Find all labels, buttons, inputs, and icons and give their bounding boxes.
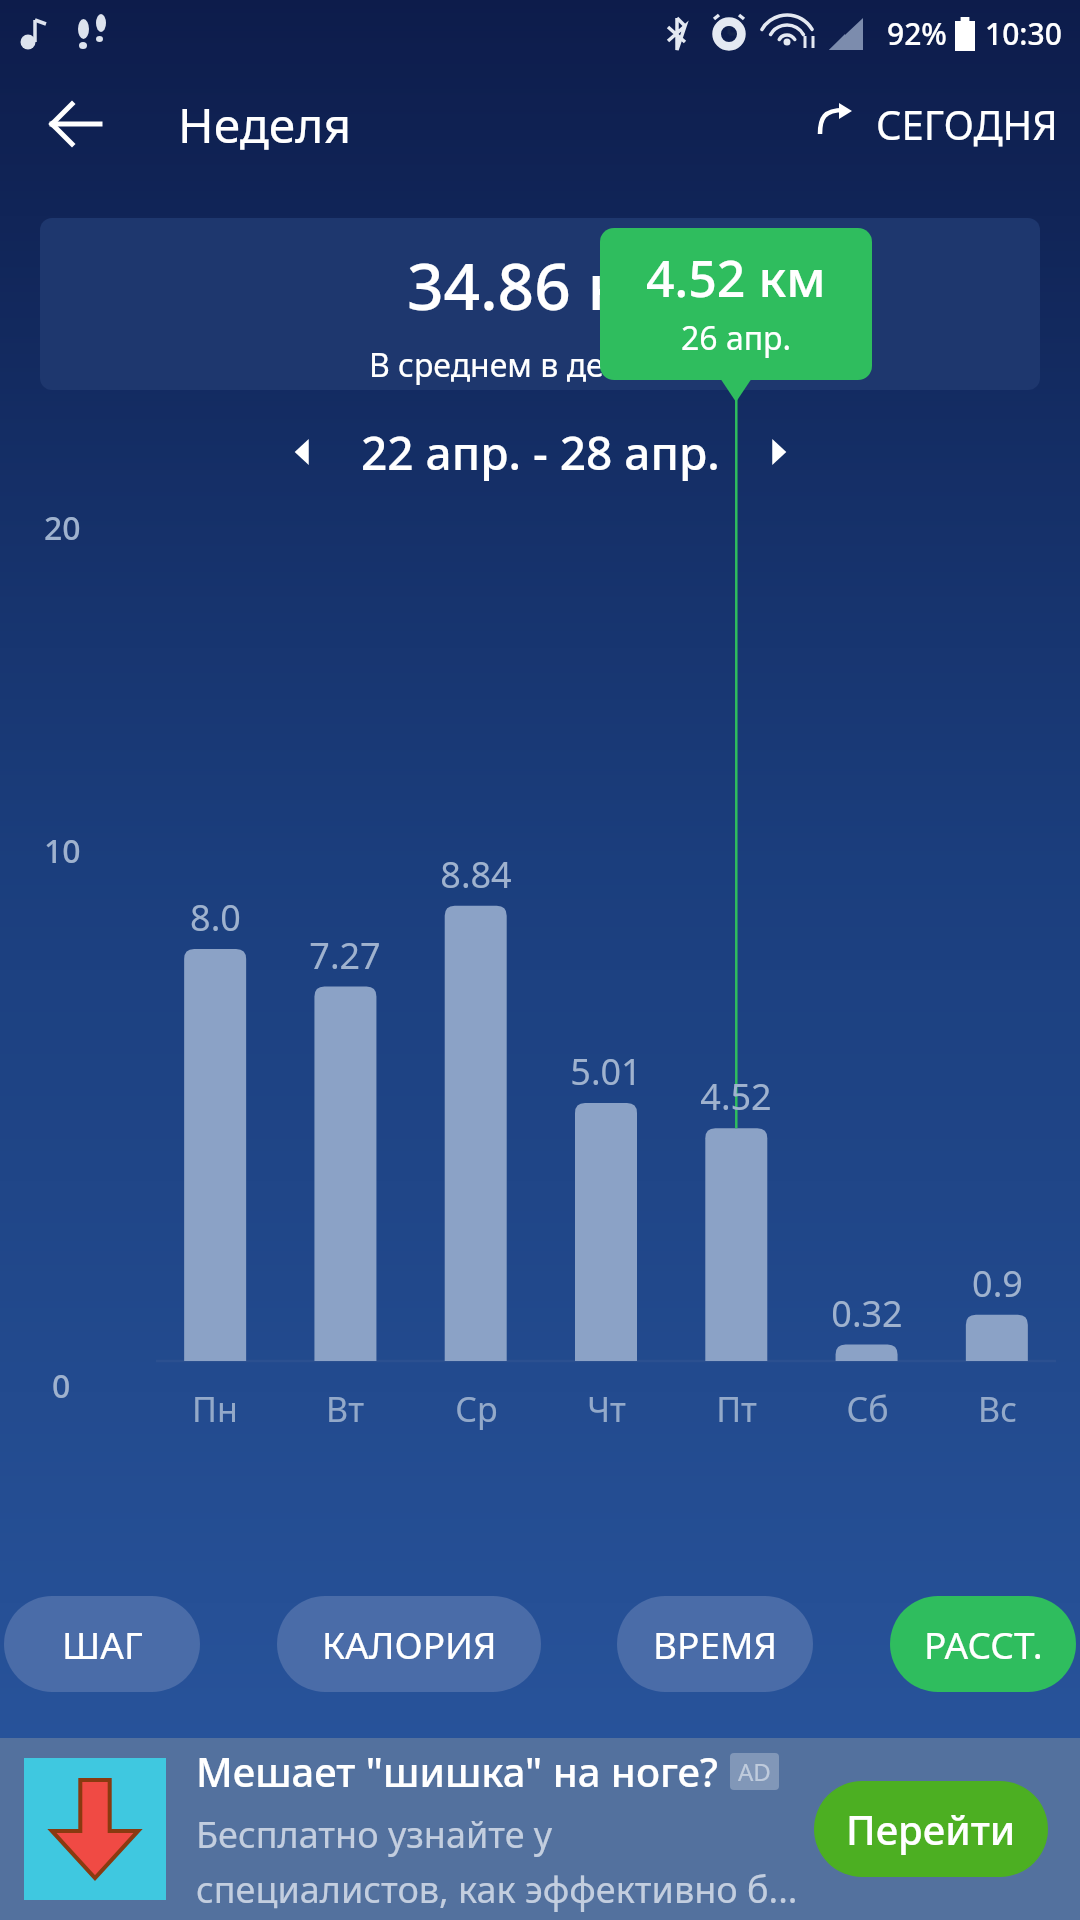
button[interactable]: ШАГ: [4, 1596, 200, 1692]
staticText: 0.32: [831, 1289, 903, 1338]
button[interactable]: 4.52 км: [600, 228, 872, 404]
staticText: 20: [44, 506, 81, 550]
staticText: AD: [738, 1755, 771, 1788]
staticText: Ср: [455, 1386, 498, 1432]
button[interactable]: РАССТ.: [890, 1596, 1076, 1692]
staticText: 10:30: [985, 13, 1062, 54]
staticText: 26 апр.: [681, 316, 792, 360]
staticText: 22 апр. - 28 апр.: [361, 421, 720, 484]
button[interactable]: Back: [34, 84, 114, 164]
staticText: 8.0: [190, 893, 241, 942]
button[interactable]: Мешает "шишка" на ноге?: [0, 1738, 1080, 1920]
button[interactable]: ВРЕМЯ: [617, 1596, 813, 1692]
staticText: Бесплатно узнайте у: [196, 1810, 553, 1859]
staticText: Вс: [978, 1386, 1017, 1432]
button[interactable]: Перейти: [814, 1781, 1048, 1877]
staticText: ВРЕМЯ: [653, 1619, 778, 1669]
staticText: СЕГОДНЯ: [876, 97, 1058, 151]
button[interactable]: КАЛОРИЯ: [277, 1596, 541, 1692]
staticText: Чт: [587, 1386, 626, 1432]
staticText: 10: [44, 829, 81, 873]
staticText: Мешает "шишка" на ноге?: [196, 1744, 718, 1798]
staticText: Неделя: [178, 92, 352, 157]
staticText: ШАГ: [62, 1619, 143, 1669]
staticText: Вт: [326, 1386, 364, 1432]
staticText: Сб: [846, 1386, 889, 1432]
staticText: 4.52 км: [646, 244, 826, 312]
staticText: 7.27: [309, 931, 381, 980]
staticText: 0: [52, 1364, 71, 1408]
button[interactable]: Share: [814, 97, 1058, 151]
button[interactable]: Previous week: [271, 420, 335, 484]
staticText: специалистов, как эффективно б...: [196, 1865, 798, 1914]
button[interactable]: Next week: [746, 420, 810, 484]
staticText: 34.86 км: [407, 242, 674, 329]
staticText: 5.01: [570, 1047, 642, 1096]
button[interactable]: 34.86 км: [40, 218, 1040, 390]
staticText: 8.84: [440, 850, 512, 899]
staticText: КАЛОРИЯ: [322, 1619, 497, 1669]
staticText: В среднем в день: 5.0: [369, 343, 711, 387]
staticText: 92%: [887, 13, 947, 54]
other: Share: [814, 102, 858, 146]
staticText: Пт: [716, 1386, 757, 1432]
staticText: РАССТ.: [924, 1619, 1043, 1669]
staticText: Перейти: [846, 1802, 1016, 1856]
staticText: Пн: [192, 1386, 238, 1432]
staticText: 4.52: [700, 1072, 772, 1121]
staticText: 0.9: [972, 1259, 1023, 1308]
